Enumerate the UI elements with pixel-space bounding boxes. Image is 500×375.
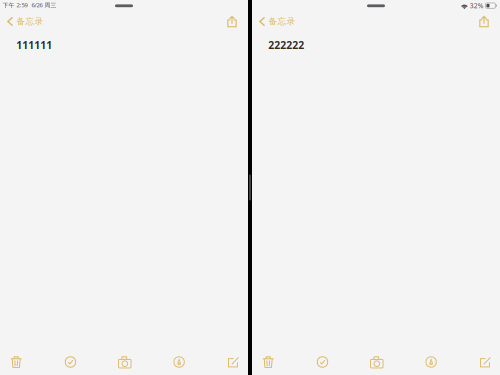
staticText: 111111 — [16, 38, 52, 52]
button[interactable]: Checklist — [306, 352, 338, 372]
button[interactable]: Markup — [415, 352, 447, 372]
button[interactable]: Markup — [163, 352, 195, 372]
button[interactable]: New Note — [469, 352, 500, 372]
staticText: 备忘录 — [268, 16, 295, 27]
button[interactable]: Camera — [361, 352, 393, 372]
button[interactable]: Share — [220, 15, 248, 28]
staticText: 222222 — [268, 38, 304, 52]
button[interactable]: 备忘录 — [0, 14, 51, 29]
button[interactable]: New Note — [217, 352, 249, 372]
button[interactable]: Share — [472, 15, 500, 28]
button[interactable]: Delete — [0, 352, 32, 372]
button[interactable]: Camera — [109, 352, 141, 372]
staticText: 备忘录 — [16, 16, 43, 27]
staticText: 下午 2:59 6/26 周三 — [2, 1, 56, 9]
staticText: 32% — [470, 1, 484, 10]
button[interactable]: Delete — [252, 352, 284, 372]
button[interactable]: Checklist — [54, 352, 86, 372]
button[interactable]: 备忘录 — [252, 14, 303, 29]
